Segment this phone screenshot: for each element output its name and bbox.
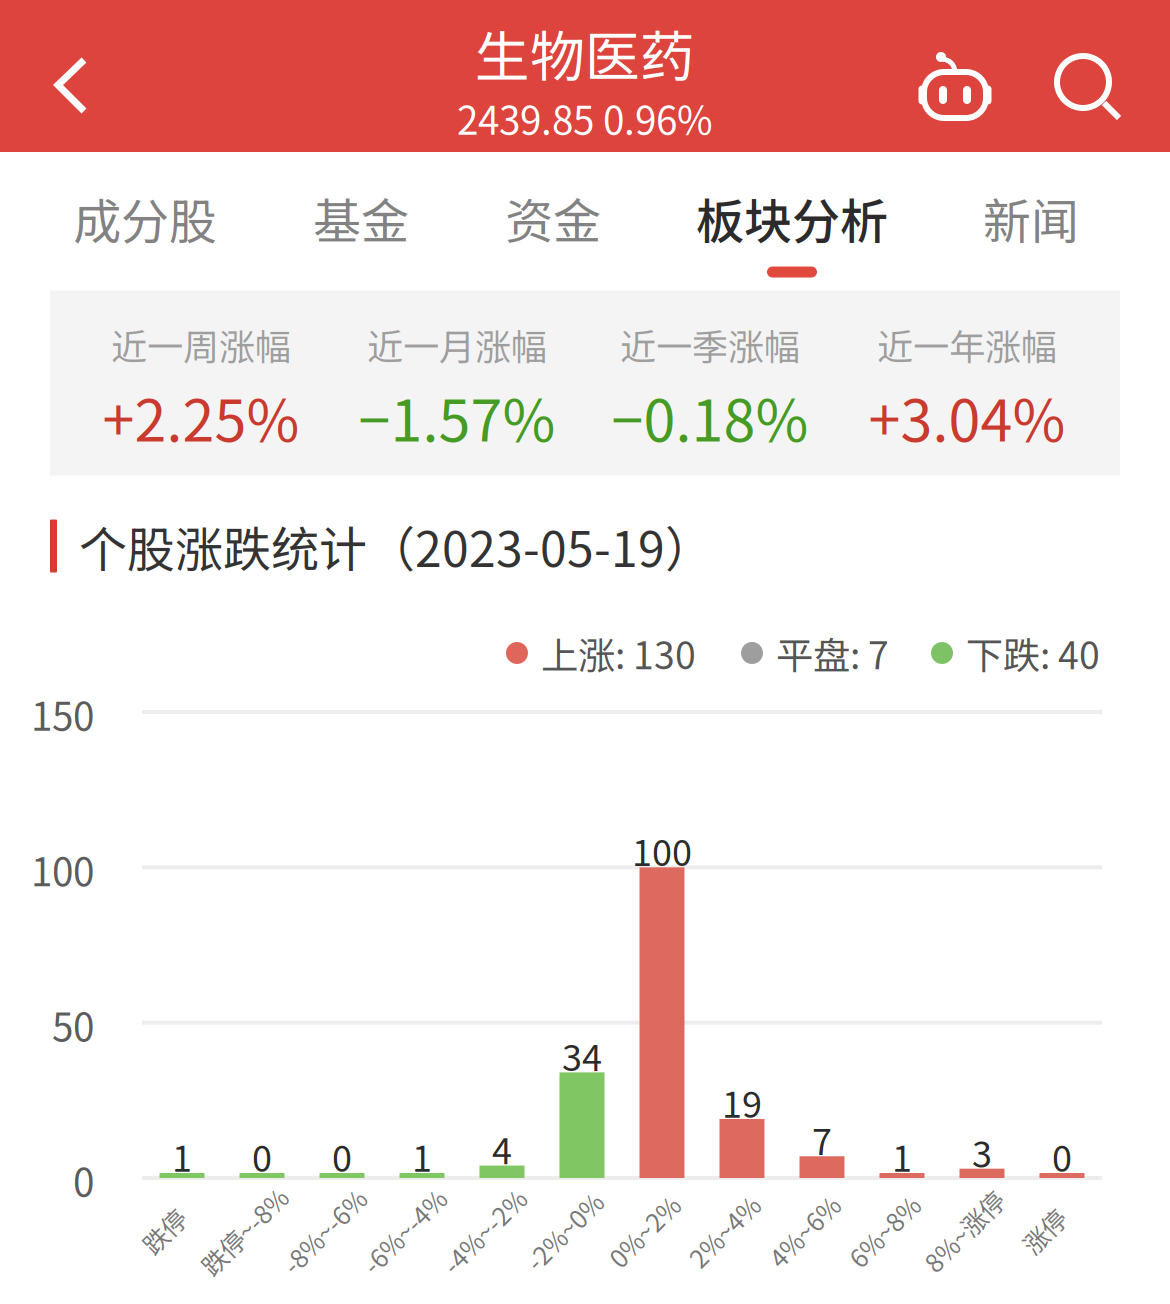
staticText: 板块分析 <box>696 183 888 253</box>
button[interactable]: 板块分析 <box>692 152 892 292</box>
staticText: 下跌: 40 <box>966 626 1100 680</box>
staticText: 6%~8% <box>840 1213 928 1249</box>
staticText: 3 <box>972 1126 992 1178</box>
staticText: 跌停 <box>139 1213 189 1249</box>
staticText: 19 <box>722 1076 762 1128</box>
staticText: 跌停~-8% <box>189 1213 299 1249</box>
staticText: 0%~2% <box>600 1213 688 1249</box>
staticText: 个股涨跌统计（2023-05-19） <box>79 511 713 581</box>
staticText: 上涨: 130 <box>541 626 696 680</box>
staticText: 100 <box>632 824 692 876</box>
staticText: 50 <box>52 997 94 1053</box>
staticText: −0.18% <box>611 375 808 458</box>
staticText: 2%~4% <box>680 1213 768 1249</box>
staticText: 生物医药 <box>475 13 695 93</box>
staticText: 1 <box>412 1130 432 1182</box>
staticText: 成分股 <box>73 183 217 253</box>
staticText: 近一月涨幅 <box>367 318 547 370</box>
button[interactable]: 成分股 <box>75 152 215 292</box>
button[interactable]: 基金 <box>291 152 431 292</box>
staticText: 1 <box>892 1130 912 1182</box>
staticText: 0 <box>252 1130 272 1182</box>
staticText: 近一周涨幅 <box>111 318 291 370</box>
staticText: 0 <box>1052 1130 1072 1182</box>
staticText: 4%~6% <box>760 1213 848 1249</box>
staticText: 基金 <box>313 183 409 253</box>
button[interactable]: 资金 <box>483 152 623 292</box>
button[interactable]: Back <box>16 10 126 162</box>
staticText: 1 <box>172 1130 192 1182</box>
staticText: -8%~-6% <box>271 1213 377 1249</box>
staticText: -6%~-4% <box>351 1213 457 1249</box>
staticText: 7 <box>812 1113 832 1165</box>
button[interactable]: AI assistant <box>899 8 1011 160</box>
staticText: 资金 <box>505 183 601 253</box>
staticText: +2.25% <box>102 375 299 458</box>
staticText: +3.04% <box>868 375 1065 458</box>
staticText: 2439.85 0.96% <box>457 90 713 146</box>
staticText: 150 <box>31 686 94 742</box>
staticText: −1.57% <box>358 375 555 458</box>
button[interactable]: Search <box>1033 12 1145 164</box>
staticText: 涨停 <box>1019 1213 1069 1249</box>
staticText: 4 <box>492 1122 512 1175</box>
staticText: 平盘: 7 <box>776 626 889 680</box>
staticText: -4%~-2% <box>431 1213 537 1249</box>
staticText: 新闻 <box>983 183 1079 253</box>
staticText: 0 <box>73 1152 94 1208</box>
staticText: 100 <box>31 841 94 897</box>
staticText: 近一年涨幅 <box>877 318 1057 370</box>
staticText: 34 <box>562 1029 602 1081</box>
staticText: 近一季涨幅 <box>620 318 800 370</box>
staticText: 8%~涨停 <box>913 1213 1014 1249</box>
button[interactable]: 新闻 <box>961 152 1101 292</box>
staticText: 0 <box>332 1130 352 1182</box>
staticText: -2%~0% <box>515 1213 612 1249</box>
